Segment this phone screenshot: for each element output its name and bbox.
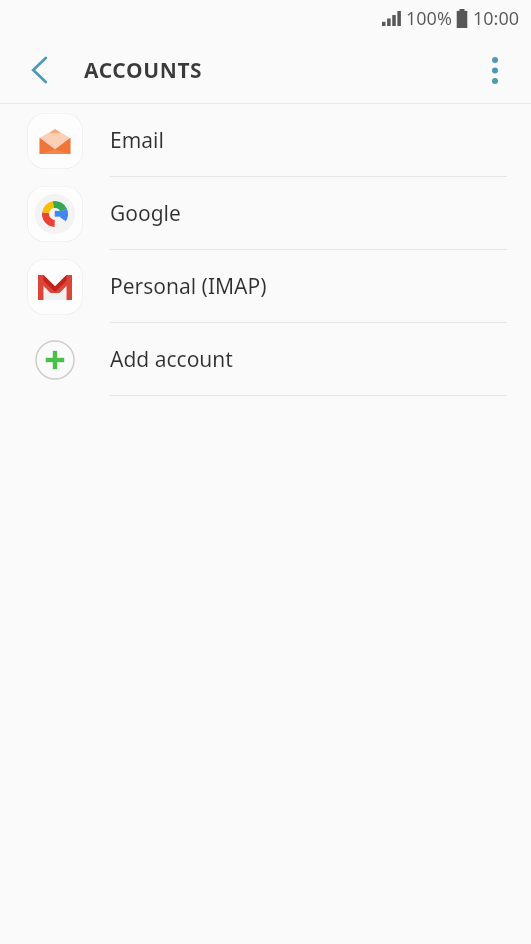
button[interactable]: Navigate up [10,41,68,99]
button[interactable]: Google [0,177,531,250]
staticText: Email [110,126,164,155]
staticText: 100% [406,6,452,31]
staticText: ACCOUNTS [84,56,203,85]
staticText: Personal (IMAP) [110,272,267,301]
staticText: Add account [110,345,233,374]
staticText: Google [110,199,181,228]
button[interactable]: Personal (IMAP) [0,250,531,323]
button[interactable]: Add account [0,323,531,396]
staticText: 10:00 [473,6,520,31]
button[interactable]: Email [0,104,531,177]
button[interactable]: More options [466,41,524,99]
